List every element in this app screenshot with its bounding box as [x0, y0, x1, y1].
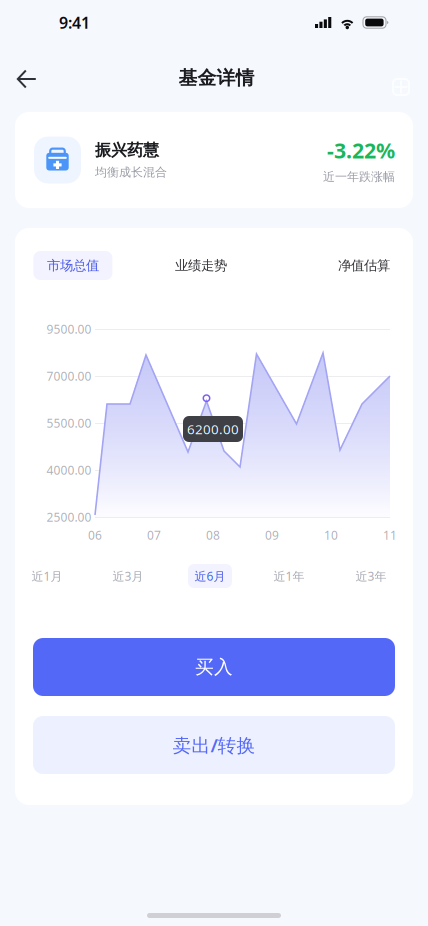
- button[interactable]: 买入: [33, 638, 395, 696]
- staticText: 业绩走势: [175, 257, 227, 274]
- staticText: 市场总值: [47, 257, 99, 274]
- staticText: 11: [383, 527, 397, 543]
- button[interactable]: 卖出/转换: [33, 716, 395, 774]
- button[interactable]: 近1年: [267, 564, 311, 588]
- staticText: 07: [147, 527, 161, 543]
- staticText: 6200.00: [187, 420, 239, 438]
- staticText: 振兴药慧: [95, 140, 159, 160]
- staticText: 近1月: [31, 568, 62, 584]
- staticText: 近3月: [112, 568, 143, 584]
- staticText: 5500.00: [46, 415, 91, 431]
- staticText: 9500.00: [46, 321, 91, 337]
- staticText: 近一年跌涨幅: [323, 169, 395, 184]
- button[interactable]: 业绩走势: [161, 251, 240, 280]
- staticText: 10: [324, 527, 338, 543]
- staticText: 近3年: [355, 568, 386, 584]
- button[interactable]: 净值估算: [324, 251, 403, 280]
- staticText: 08: [206, 527, 220, 543]
- staticText: 近6月: [194, 568, 225, 584]
- button[interactable]: 返回: [5, 57, 49, 101]
- staticText: -3.22%: [327, 136, 395, 164]
- staticText: 4000.00: [46, 462, 91, 478]
- staticText: 06: [88, 527, 102, 543]
- staticText: 均衡成长混合: [95, 165, 167, 180]
- button[interactable]: 近3月: [106, 564, 150, 588]
- staticText: 近1年: [273, 568, 304, 584]
- staticText: 09: [265, 527, 279, 543]
- staticText: 2500.00: [46, 509, 91, 525]
- staticText: 基金详情: [178, 67, 254, 89]
- staticText: 净值估算: [338, 257, 390, 274]
- button[interactable]: 近6月: [188, 564, 232, 588]
- button[interactable]: 市场总值: [33, 251, 112, 280]
- staticText: 卖出/转换: [172, 733, 255, 757]
- button[interactable]: 近3年: [349, 564, 393, 588]
- staticText: 9:41: [59, 12, 90, 33]
- staticText: 7000.00: [46, 368, 91, 384]
- button[interactable]: 近1月: [25, 564, 69, 588]
- button[interactable]: 振兴药慧: [15, 112, 413, 208]
- staticText: 买入: [195, 655, 233, 678]
